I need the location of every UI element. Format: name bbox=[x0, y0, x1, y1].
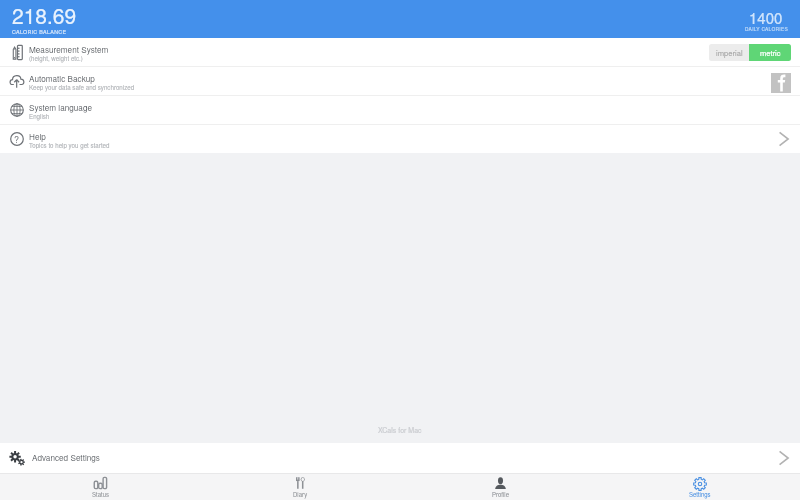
button[interactable]: ? bbox=[0, 125, 800, 153]
button[interactable]: Status bbox=[0, 474, 200, 500]
button[interactable]: Settings bbox=[600, 474, 800, 500]
staticText: 218.69 bbox=[12, 0, 77, 30]
staticText: Keep your data safe and synchronized bbox=[29, 83, 135, 92]
staticText: Help bbox=[29, 131, 46, 143]
other: Open bbox=[778, 451, 791, 465]
staticText: imperial bbox=[716, 47, 743, 58]
button[interactable]: imperial bbox=[709, 44, 749, 61]
staticText: Profile bbox=[492, 490, 509, 499]
staticText: Settings bbox=[689, 490, 711, 499]
other: Open bbox=[778, 132, 791, 146]
staticText: metric bbox=[760, 47, 781, 58]
staticText: Topics to help you get started bbox=[29, 141, 110, 150]
staticText: 1400 bbox=[749, 7, 783, 28]
button[interactable]: Facebook bbox=[771, 73, 791, 93]
button[interactable]: Advanced Settings bbox=[0, 443, 800, 473]
button[interactable]: Diary bbox=[200, 474, 400, 500]
staticText: Measurement System bbox=[29, 44, 109, 56]
staticText: English bbox=[29, 112, 50, 121]
staticText: XCals for Mac bbox=[378, 425, 422, 435]
button[interactable]: Measurement System bbox=[0, 38, 800, 66]
staticText: DAILY CALORIES bbox=[745, 25, 789, 32]
staticText: ? bbox=[14, 133, 20, 146]
staticText: Diary bbox=[293, 490, 308, 499]
button[interactable]: System language bbox=[0, 96, 800, 124]
staticText: CALORIC BALANCE bbox=[12, 28, 67, 36]
button[interactable]: Automatic Backup bbox=[0, 67, 800, 95]
staticText: Automatic Backup bbox=[29, 73, 95, 85]
staticText: (height, weight etc.) bbox=[29, 54, 83, 63]
button[interactable]: metric bbox=[749, 44, 791, 61]
button[interactable]: Profile bbox=[400, 474, 600, 500]
staticText: System language bbox=[29, 102, 93, 114]
staticText: Advanced Settings bbox=[32, 452, 100, 464]
staticText: Status bbox=[92, 490, 109, 499]
